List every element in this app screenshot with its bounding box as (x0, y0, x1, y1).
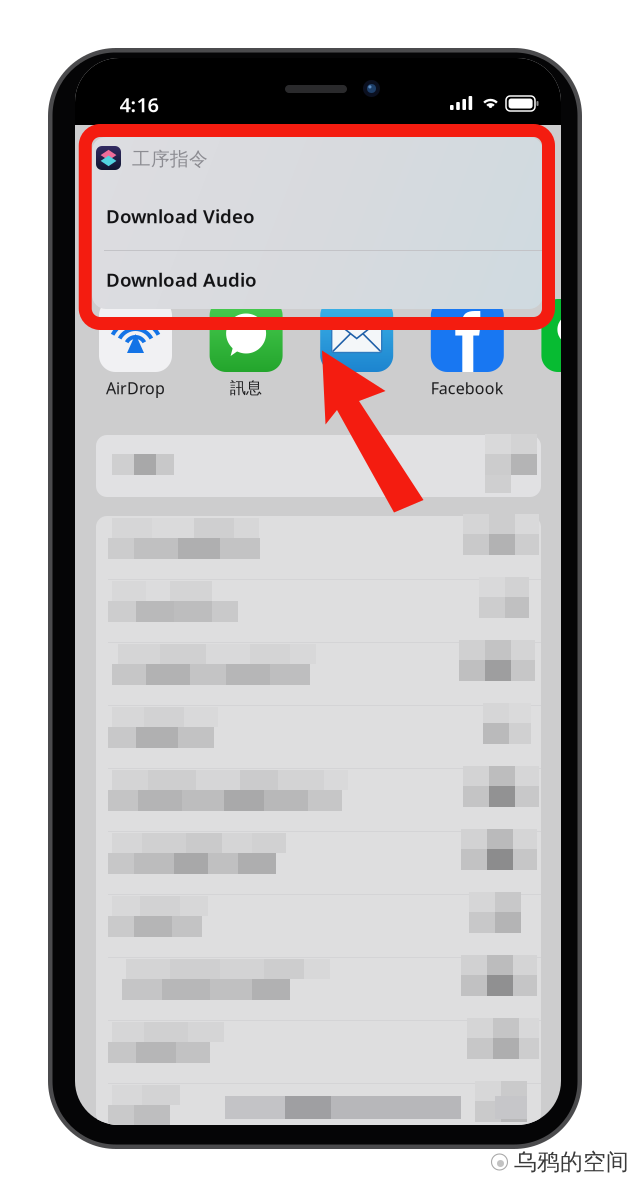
staticText: Download Audio (106, 267, 257, 292)
button[interactable]: Download Audio (92, 250, 543, 309)
button[interactable]: Download Video (92, 182, 543, 250)
staticText: AirDrop (106, 377, 165, 399)
button[interactable]: Mail (320, 299, 393, 397)
button[interactable]: Messages (210, 299, 283, 397)
staticText: Facebook (431, 377, 504, 399)
staticText: Download Video (106, 204, 255, 228)
button[interactable]: Facebook (431, 299, 504, 397)
staticText: 4:16 (119, 91, 158, 118)
button[interactable]: WeChat (541, 299, 614, 397)
staticText: 乌鸦的空间 (514, 1148, 629, 1176)
staticText: 訊息 (230, 378, 262, 398)
button[interactable]: AirDrop (99, 299, 172, 397)
staticText: 工序指令 (132, 147, 208, 170)
